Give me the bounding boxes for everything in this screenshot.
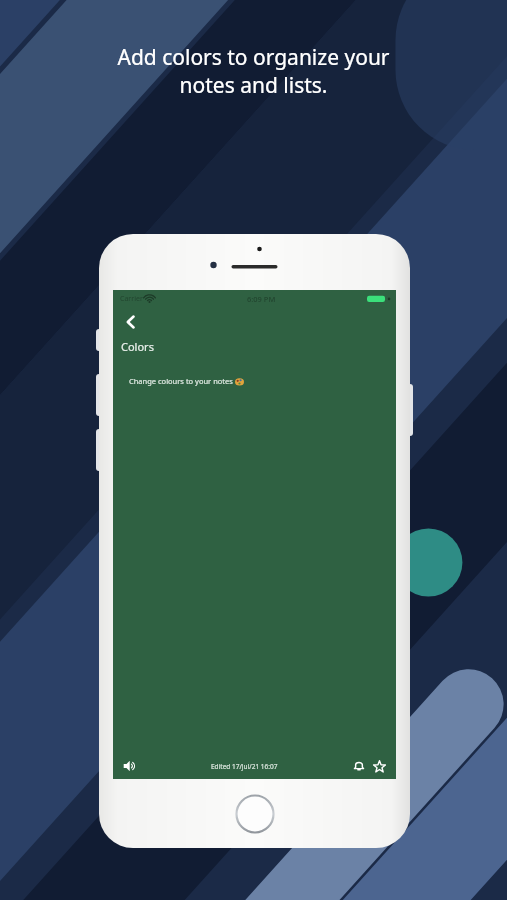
button[interactable]: Reminder	[349, 756, 369, 776]
staticText: Carrier	[120, 294, 143, 304]
button[interactable]: Back	[118, 309, 144, 335]
staticText: Edited 17/Jul/21 16:07	[211, 762, 278, 771]
button[interactable]: Read aloud	[120, 756, 140, 776]
staticText: 6:09 PM	[247, 294, 276, 304]
button[interactable]: Home	[235, 794, 275, 834]
button[interactable]: Favourite	[369, 756, 389, 776]
staticText: Colors	[121, 339, 154, 354]
staticText: Change colours to your notes	[129, 376, 235, 386]
button[interactable]: Colors	[121, 339, 154, 354]
staticText: Add colors to organize your notes and li…	[117, 43, 390, 99]
